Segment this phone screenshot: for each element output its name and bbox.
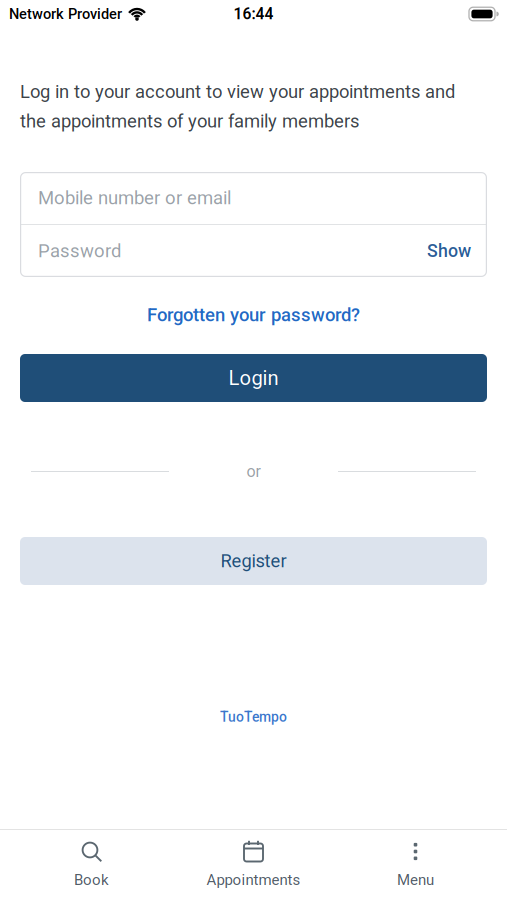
staticText: the appointments of your family members (20, 110, 359, 132)
button[interactable]: Menu (397, 840, 434, 889)
staticText: Login (228, 366, 278, 390)
staticText: Register (220, 550, 286, 572)
staticText: Log in to your account to view your appo… (20, 81, 455, 102)
button[interactable]: Show (427, 241, 471, 261)
button[interactable]: Appointments (206, 840, 300, 889)
staticText: Menu (397, 871, 434, 889)
button[interactable]: Register (20, 537, 487, 585)
staticText: Show (427, 241, 471, 261)
staticText: TuoTempo (220, 709, 287, 725)
button[interactable]: Mobile number or email (20, 172, 487, 224)
button[interactable]: Login (20, 354, 487, 402)
button[interactable]: Book (74, 840, 109, 889)
button[interactable]: TuoTempo (220, 708, 287, 726)
staticText: Network Provider (9, 5, 122, 22)
staticText: Appointments (206, 871, 300, 889)
staticText: Book (74, 871, 109, 889)
staticText: Password (38, 240, 121, 262)
staticText: Mobile number or email (38, 187, 231, 209)
staticText: 16:44 (233, 5, 273, 23)
button[interactable]: Password (20, 225, 487, 277)
staticText: Forgotten your password? (147, 304, 360, 326)
button[interactable]: Forgotten your password? (147, 302, 360, 328)
staticText: or (246, 462, 260, 481)
